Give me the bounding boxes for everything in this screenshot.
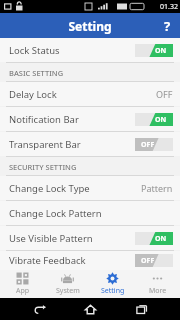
- staticText: Change Lock Pattern: [9, 207, 173, 220]
- button[interactable]: Toggle on: [135, 44, 173, 57]
- button[interactable]: Change Lock Pattern: [0, 201, 180, 225]
- staticText: Vibrate Feedback: [9, 254, 135, 267]
- staticText: Lock Status: [9, 44, 135, 57]
- button[interactable]: Recents: [130, 298, 152, 320]
- staticText: ?: [164, 17, 171, 35]
- staticText: BASIC SETTING: [9, 68, 64, 78]
- staticText: OFF: [141, 256, 155, 266]
- staticText: ON: [155, 115, 167, 125]
- button[interactable]: Lock Status: [0, 38, 180, 62]
- staticText: ON: [155, 46, 167, 56]
- staticText: 01.32: [160, 2, 178, 12]
- staticText: OFF: [141, 140, 155, 150]
- button[interactable]: Vibrate Feedback: [0, 251, 180, 270]
- button[interactable]: Back: [29, 298, 51, 320]
- staticText: Notification Bar: [9, 113, 135, 126]
- staticText: Setting: [101, 286, 125, 296]
- button[interactable]: Home: [79, 298, 101, 320]
- button[interactable]: App: [0, 270, 45, 298]
- staticText: SECURITY SETTING: [9, 162, 77, 172]
- button[interactable]: Toggle off: [135, 138, 173, 151]
- staticText: OFF: [156, 88, 173, 100]
- staticText: Use Visible Pattern: [9, 232, 135, 245]
- staticText: Pattern: [141, 182, 173, 194]
- button[interactable]: Toggle on: [135, 113, 173, 126]
- staticText: ON: [155, 234, 167, 244]
- button[interactable]: More: [135, 270, 180, 298]
- staticText: System: [56, 286, 80, 296]
- button[interactable]: Transparent Bar: [0, 132, 180, 156]
- button[interactable]: Use Visible Pattern: [0, 226, 180, 250]
- staticText: Setting: [68, 18, 112, 34]
- button[interactable]: System: [45, 270, 90, 298]
- button[interactable]: Toggle off: [135, 254, 173, 267]
- button[interactable]: Help: [155, 13, 180, 38]
- button[interactable]: Setting: [90, 270, 135, 298]
- staticText: App: [16, 286, 30, 296]
- staticText: Delay Lock: [9, 88, 156, 101]
- staticText: Change Lock Type: [9, 182, 141, 195]
- button[interactable]: Notification Bar: [0, 107, 180, 131]
- button[interactable]: Delay Lock: [0, 82, 180, 106]
- staticText: More: [149, 286, 167, 296]
- button[interactable]: Change Lock Type: [0, 176, 180, 200]
- staticText: Transparent Bar: [9, 138, 135, 151]
- button[interactable]: Toggle on: [135, 232, 173, 245]
